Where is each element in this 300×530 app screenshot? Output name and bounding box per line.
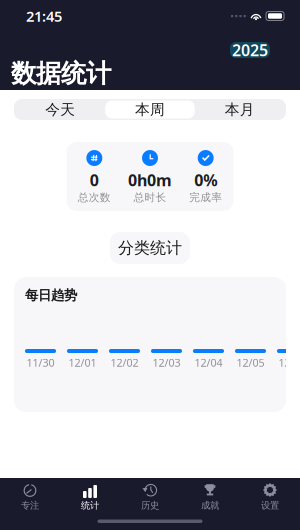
staticText: 专注 — [21, 500, 39, 511]
staticText: 12/02 — [110, 355, 138, 370]
button[interactable]: 设置 — [240, 482, 300, 510]
staticText: 21:45 — [26, 6, 62, 26]
staticText: 本月 — [225, 100, 255, 118]
button[interactable]: 分类统计 — [110, 232, 190, 264]
button[interactable]: 本周 — [105, 100, 195, 118]
staticText: 12/05 — [236, 355, 264, 370]
button[interactable]: 今天 — [15, 100, 105, 118]
staticText: 11/30 — [26, 355, 54, 370]
staticText: 今天 — [45, 100, 75, 118]
staticText: 总时长 — [133, 191, 166, 204]
button[interactable]: 2025 — [230, 42, 270, 58]
staticText: 总次数 — [78, 191, 111, 204]
button[interactable]: 成就 — [180, 482, 240, 510]
staticText: 成就 — [201, 500, 219, 511]
staticText: 本周 — [135, 100, 165, 118]
staticText: 分类统计 — [118, 238, 182, 258]
staticText: 统计 — [81, 500, 99, 511]
staticText: 0 — [90, 169, 99, 191]
staticText: 12/01 — [68, 355, 96, 370]
button[interactable]: 本月 — [195, 100, 284, 118]
staticText: 12/04 — [194, 355, 222, 370]
staticText: 历史 — [141, 500, 159, 511]
staticText: 完成率 — [189, 191, 222, 204]
button[interactable]: 历史 — [120, 482, 180, 510]
button[interactable]: 专注 — [0, 482, 60, 510]
staticText: 每日趋势 — [25, 287, 77, 303]
staticText: 12/03 — [152, 355, 180, 370]
staticText: 0h0m — [128, 169, 172, 191]
staticText: 0% — [194, 169, 217, 191]
staticText: 12/06 — [278, 355, 300, 370]
button[interactable]: 统计 — [60, 482, 120, 510]
staticText: 设置 — [261, 500, 279, 511]
staticText: 2025 — [232, 39, 268, 61]
staticText: 数据统计 — [11, 58, 111, 89]
